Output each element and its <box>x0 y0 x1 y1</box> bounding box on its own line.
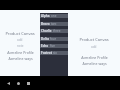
staticText: Product Canvas <box>79 37 109 42</box>
button[interactable]: Delta <box>40 37 68 41</box>
staticText: Foxtrot <box>41 51 52 55</box>
button[interactable]: Home <box>14 79 23 88</box>
button[interactable]: Recent apps <box>24 79 33 88</box>
button[interactable]: Back <box>4 79 13 88</box>
staticText: Acmeline ways <box>82 61 107 66</box>
staticText: Acmeline Profile <box>81 55 108 60</box>
staticText: five <box>50 44 56 48</box>
staticText: note <box>17 44 24 48</box>
button[interactable]: Bravo <box>40 22 68 26</box>
staticText: two <box>51 22 57 26</box>
staticText: three <box>53 29 61 33</box>
staticText: one <box>51 14 57 18</box>
staticText: Acmeline ways <box>8 56 33 61</box>
staticText: four <box>50 37 56 41</box>
staticText: Bravo <box>41 22 50 26</box>
staticText: add <box>91 45 97 49</box>
staticText: Product Canvas <box>5 31 35 36</box>
staticText: Alpha <box>41 14 50 18</box>
staticText: six <box>53 51 57 55</box>
staticText: Echo <box>41 44 49 48</box>
staticText: Acmeline Profile <box>7 50 34 55</box>
button[interactable]: Alpha <box>40 14 68 18</box>
staticText: Delta <box>41 37 49 41</box>
staticText: Charlie <box>41 29 52 33</box>
button[interactable]: Echo <box>40 44 68 48</box>
button[interactable]: Charlie <box>40 29 68 33</box>
staticText: add <box>17 38 23 42</box>
button[interactable]: Foxtrot <box>40 51 68 55</box>
